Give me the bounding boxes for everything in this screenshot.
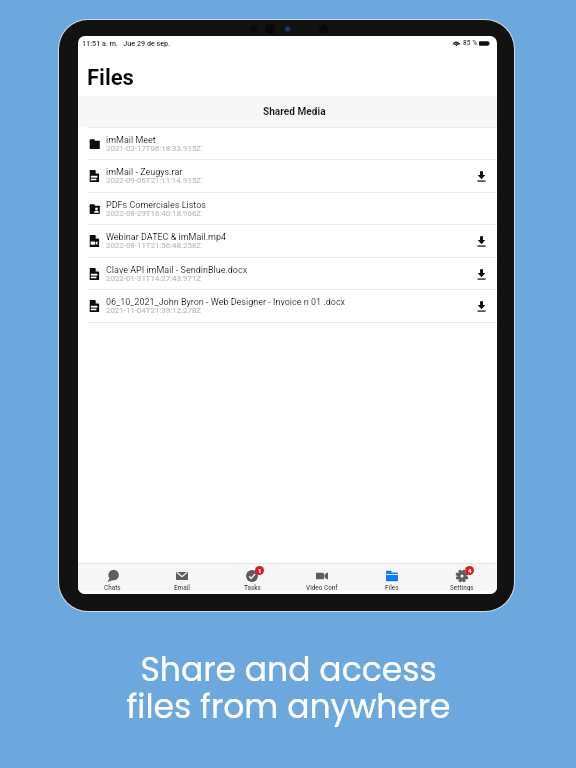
staticText: Share and access xyxy=(140,646,437,692)
button[interactable]: Clave API imMail - SendinBlue.docx xyxy=(78,258,497,290)
button[interactable]: Video Conf xyxy=(287,564,357,591)
staticText: 2022-09-06T21:11:14.915Z xyxy=(106,176,202,185)
button[interactable]: Download xyxy=(473,266,489,282)
staticText: 2022-08-29T16:40:18.966Z xyxy=(106,209,202,218)
staticText: Files xyxy=(385,584,399,591)
button[interactable]: Download xyxy=(473,168,489,184)
staticText: 1 xyxy=(258,567,262,574)
staticText: imMail Meet xyxy=(106,135,156,146)
button[interactable]: Chats xyxy=(78,564,147,591)
staticText: Files xyxy=(87,65,134,91)
staticText: Chats xyxy=(104,584,121,591)
staticText: files from anywhere xyxy=(126,683,451,729)
button[interactable]: 1 xyxy=(217,564,287,591)
staticText: 2021-11-04T21:39:12.278Z xyxy=(106,306,202,315)
staticText: Settings xyxy=(450,584,474,591)
button[interactable]: Email xyxy=(147,564,217,591)
staticText: 2022-08-11T21:56:48.258Z xyxy=(106,241,202,250)
staticText: Clave API imMail - SendinBlue.docx xyxy=(106,265,248,276)
staticText: Email xyxy=(174,584,190,591)
button[interactable]: Webinar DATEC & imMail.mp4 xyxy=(78,225,497,257)
staticText: Tasks xyxy=(244,584,261,591)
staticText: PDFs Comerciales Listos xyxy=(106,200,207,211)
button[interactable]: PDFs Comerciales Listos xyxy=(78,193,497,225)
staticText: Shared Media xyxy=(263,106,326,118)
button[interactable]: imMail - Zeugys.rar xyxy=(78,160,497,192)
staticText: Video Conf xyxy=(306,584,338,591)
button[interactable]: imMail Meet xyxy=(78,128,497,160)
staticText: 06_10_2021_John Byron - Web Designer - I… xyxy=(106,297,346,308)
button[interactable]: Download xyxy=(473,298,489,314)
button[interactable]: 4 xyxy=(427,564,497,591)
staticText: 2021-02-17T06:18:33.915Z xyxy=(106,144,202,153)
staticText: 4 xyxy=(468,567,472,574)
staticText: 11:51 a. m. Jue 29 de sep. xyxy=(82,39,171,47)
staticText: imMail - Zeugys.rar xyxy=(106,167,183,178)
staticText: 2022-01-31T14:27:43.971Z xyxy=(106,274,202,283)
staticText: 85 % xyxy=(463,39,477,47)
staticText: Webinar DATEC & imMail.mp4 xyxy=(106,232,227,243)
button[interactable]: 06_10_2021_John Byron - Web Designer - I… xyxy=(78,290,497,322)
button[interactable]: Files xyxy=(357,564,427,591)
button[interactable]: Download xyxy=(473,233,489,249)
